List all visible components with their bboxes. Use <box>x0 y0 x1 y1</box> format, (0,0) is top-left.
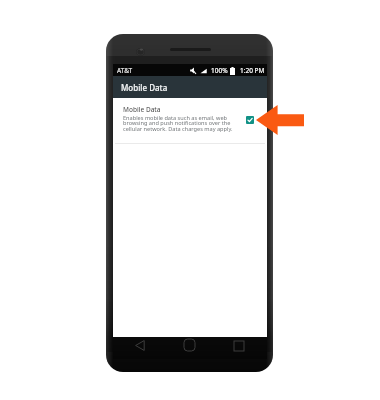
staticText: 100% <box>211 66 228 75</box>
staticText: Mobile Data <box>123 105 161 114</box>
button[interactable]: Recent apps <box>226 335 252 357</box>
staticText: Enables mobile data such as email, web b… <box>123 114 233 133</box>
staticText: Mobile Data <box>121 82 168 93</box>
button[interactable]: Back <box>127 334 153 356</box>
staticText: AT&T <box>117 66 133 75</box>
button[interactable]: Mobile Data on <box>246 116 254 124</box>
button[interactable]: Mobile Data <box>113 98 267 143</box>
staticText: 1:20 PM <box>240 66 265 75</box>
button[interactable]: Home <box>176 334 202 356</box>
button[interactable]: Mobile Data <box>113 76 267 98</box>
